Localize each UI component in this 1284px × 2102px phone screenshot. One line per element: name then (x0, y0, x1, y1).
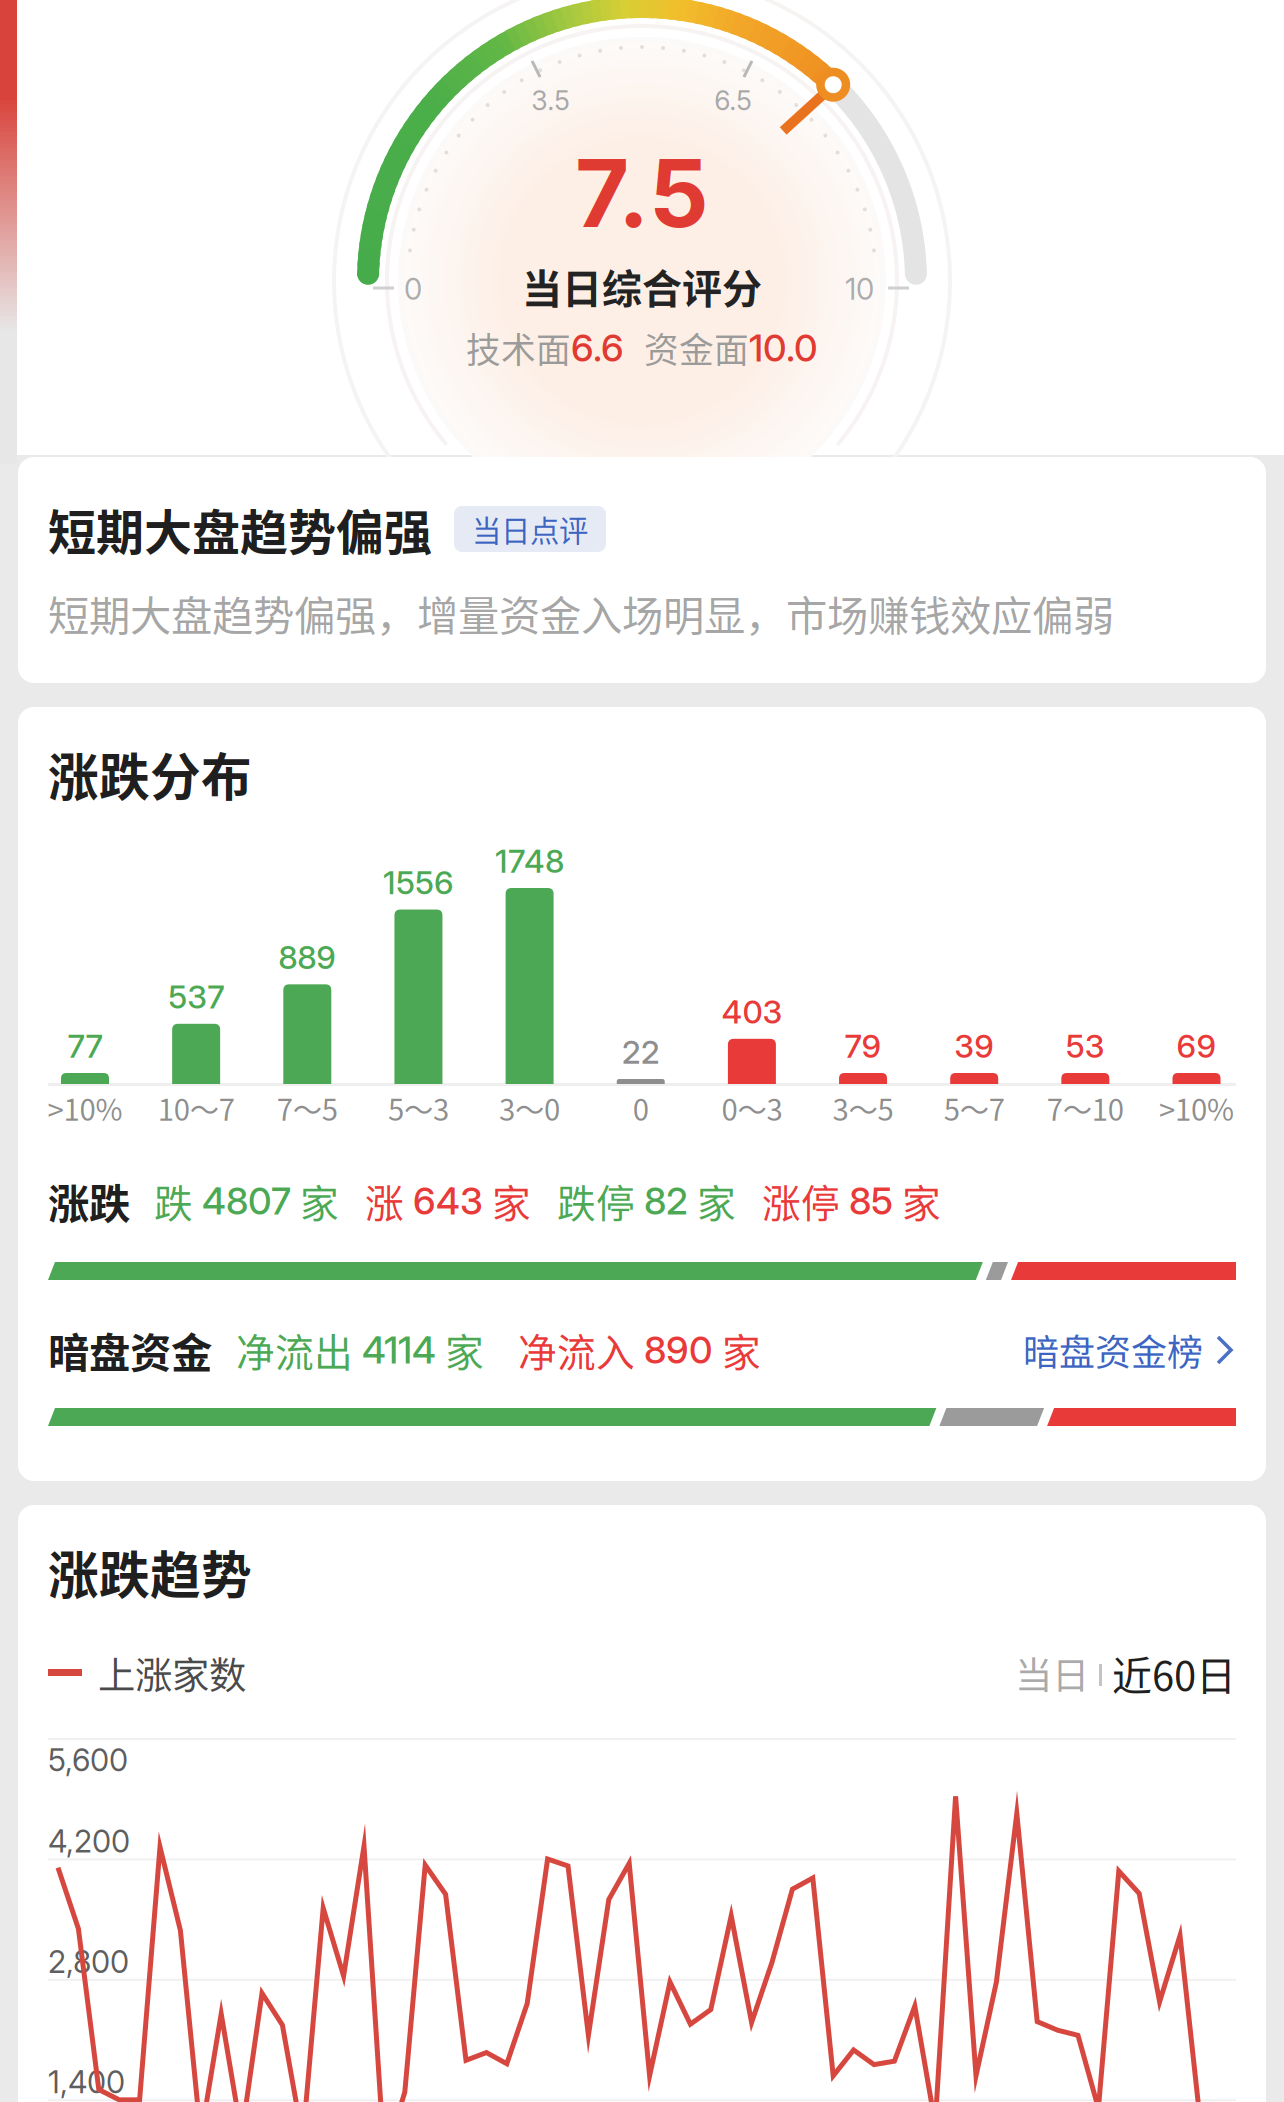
staticText: 家 (697, 1173, 736, 1229)
staticText: 6.5 (714, 84, 752, 117)
staticText: 53 (1066, 1027, 1105, 1065)
staticText: 79 (845, 1027, 882, 1065)
staticText: 77 (67, 1027, 102, 1065)
staticText: 短期大盘趋势偏强 (48, 494, 432, 564)
staticText: 39 (954, 1027, 994, 1065)
button[interactable]: 暗盘资金榜 (1023, 1324, 1236, 1376)
staticText: 7～10 (1047, 1087, 1124, 1129)
staticText: 当日 (1015, 1646, 1089, 1700)
staticText: 7～5 (277, 1087, 338, 1129)
staticText: 家 (902, 1173, 941, 1229)
staticText: 0 (404, 271, 422, 307)
staticText: >10% (1159, 1087, 1234, 1129)
staticText: 4807 (202, 1178, 291, 1224)
staticText: 家 (492, 1173, 531, 1229)
staticText: 涨跌 (48, 1171, 130, 1231)
staticText: 涨跌趋势 (48, 1535, 252, 1609)
staticText: 5～7 (944, 1087, 1005, 1129)
staticText: 家 (300, 1173, 339, 1229)
staticText: 69 (1176, 1027, 1216, 1065)
staticText: 1,400 (48, 2064, 125, 2101)
staticText: 3～0 (499, 1087, 560, 1129)
staticText: 家 (445, 1322, 484, 1378)
staticText: 537 (168, 977, 224, 1016)
staticText: >10% (47, 1087, 122, 1129)
staticText: 技术面 (466, 323, 571, 373)
staticText: 10～7 (158, 1087, 235, 1129)
staticText: 跌停 (557, 1173, 635, 1229)
staticText: 4,200 (48, 1823, 130, 1860)
staticText: 82 (644, 1178, 688, 1224)
staticText: 上涨家数 (98, 1646, 246, 1700)
staticText: 10 (845, 271, 874, 307)
staticText: 4114 (362, 1327, 436, 1373)
staticText: 涨停 (762, 1173, 840, 1229)
staticText: 22 (622, 1033, 660, 1071)
button[interactable]: 近60日 (1112, 1651, 1236, 1695)
staticText: 1748 (495, 842, 564, 880)
staticText: 资金面 (644, 323, 749, 373)
staticText: 0～3 (721, 1087, 782, 1129)
staticText: 890 (644, 1327, 713, 1373)
staticText: 889 (278, 938, 336, 977)
staticText: 403 (721, 992, 782, 1031)
staticText: 85 (849, 1178, 893, 1224)
staticText: 涨跌分布 (48, 737, 252, 811)
staticText: 家 (722, 1322, 761, 1378)
staticText: 6.6 (571, 325, 624, 371)
staticText: 5～3 (388, 1087, 449, 1129)
staticText: 当日点评 (472, 508, 588, 550)
staticText: 1556 (383, 863, 454, 902)
staticText: 当日综合评分 (522, 257, 762, 315)
staticText: 10.0 (749, 325, 818, 371)
staticText: 近60日 (1112, 1644, 1236, 1702)
staticText: 短期大盘趋势偏强，增量资金入场明显，市场赚钱效应偏弱 (48, 583, 1114, 643)
staticText: 2,800 (48, 1943, 129, 1980)
staticText: 5,600 (48, 1741, 128, 1778)
staticText: 7.5 (575, 136, 709, 249)
staticText: 643 (413, 1178, 483, 1224)
staticText: 涨 (365, 1173, 404, 1229)
staticText: 净流出 (236, 1322, 353, 1378)
button[interactable]: 当日 (1015, 1651, 1089, 1695)
staticText: 3～5 (833, 1087, 894, 1129)
staticText: 暗盘资金榜 (1023, 1324, 1203, 1376)
staticText: 暗盘资金 (48, 1320, 212, 1380)
staticText: 净流入 (518, 1322, 635, 1378)
staticText: 3.5 (531, 84, 570, 117)
staticText: 0 (633, 1087, 649, 1129)
staticText: 跌 (154, 1173, 193, 1229)
